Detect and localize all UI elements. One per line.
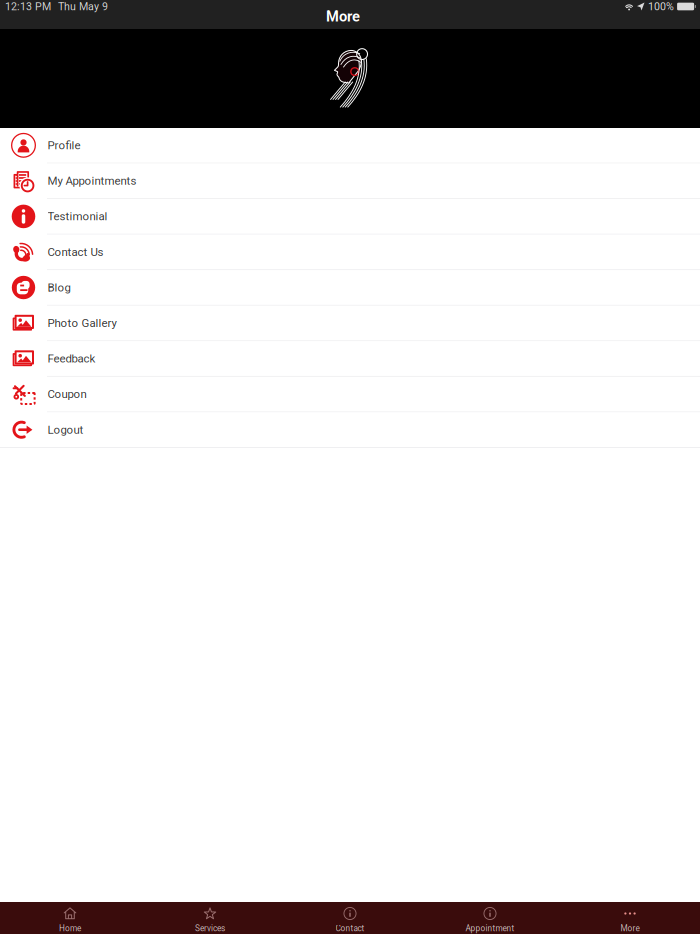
button[interactable]: Feedback	[0, 341, 700, 377]
staticText: My Appointments	[47, 174, 136, 188]
button[interactable]: My Appointments	[0, 163, 700, 199]
button[interactable]: Blog	[0, 270, 700, 306]
staticText: Blog	[47, 281, 70, 294]
staticText: 100%	[648, 0, 674, 13]
staticText: More	[326, 8, 360, 25]
button[interactable]: Logout	[0, 412, 700, 448]
button[interactable]: Services	[140, 902, 280, 934]
staticText: Testimonial	[47, 210, 107, 223]
staticText: Contact	[335, 923, 364, 933]
staticText: Coupon	[47, 387, 86, 401]
button[interactable]: Photo Gallery	[0, 306, 700, 341]
staticText: Home	[59, 923, 81, 933]
staticText: 12:13 PM	[5, 0, 51, 13]
staticText: Profile	[47, 139, 80, 152]
button[interactable]: Home	[0, 902, 140, 934]
staticText: Logout	[47, 423, 83, 436]
button[interactable]: Contact	[280, 902, 420, 934]
button[interactable]: Appointment	[420, 902, 560, 934]
button[interactable]: Testimonial	[0, 199, 700, 235]
button[interactable]: Coupon	[0, 377, 700, 412]
button[interactable]: Profile	[0, 128, 700, 163]
staticText: Contact Us	[47, 245, 103, 259]
staticText: More	[620, 923, 639, 933]
button[interactable]: Contact Us	[0, 235, 700, 270]
button[interactable]: More	[560, 902, 700, 934]
staticText: Feedback	[47, 352, 95, 365]
staticText: Appointment	[465, 923, 514, 933]
staticText: Thu May 9	[58, 0, 108, 13]
staticText: Services	[195, 923, 225, 933]
staticText: Photo Gallery	[47, 316, 116, 330]
